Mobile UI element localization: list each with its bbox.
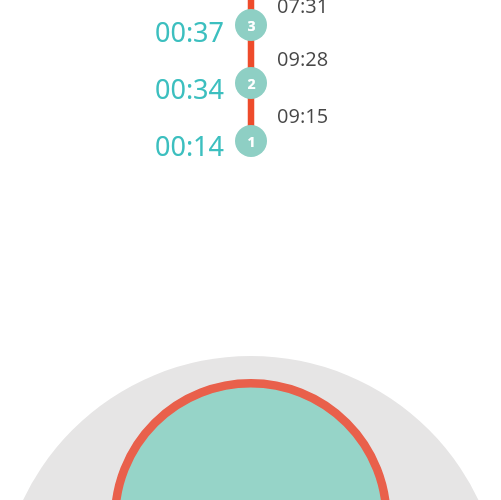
staticText: 2 xyxy=(247,74,256,93)
button[interactable]: 00:37 xyxy=(140,13,225,45)
staticText: 00:37 xyxy=(155,13,225,45)
staticText: 07:31 xyxy=(277,0,329,19)
staticText: 09:28 xyxy=(277,45,329,72)
button[interactable]: 3 xyxy=(235,9,267,41)
button[interactable]: СХВАТКА xyxy=(111,379,391,500)
staticText: 00:34 xyxy=(155,70,225,102)
button[interactable]: 07:31 xyxy=(277,0,357,20)
button[interactable]: 09:15 xyxy=(277,100,357,130)
button[interactable]: 09:28 xyxy=(277,43,357,73)
staticText: 3 xyxy=(247,16,256,35)
staticText: 09:15 xyxy=(277,102,329,129)
staticText: 00:14 xyxy=(155,127,225,159)
button[interactable]: 2 xyxy=(235,67,267,99)
button[interactable]: 00:34 xyxy=(140,70,225,102)
button[interactable]: 00:14 xyxy=(140,127,225,159)
staticText: 1 xyxy=(247,132,256,151)
button[interactable]: 1 xyxy=(235,125,267,157)
